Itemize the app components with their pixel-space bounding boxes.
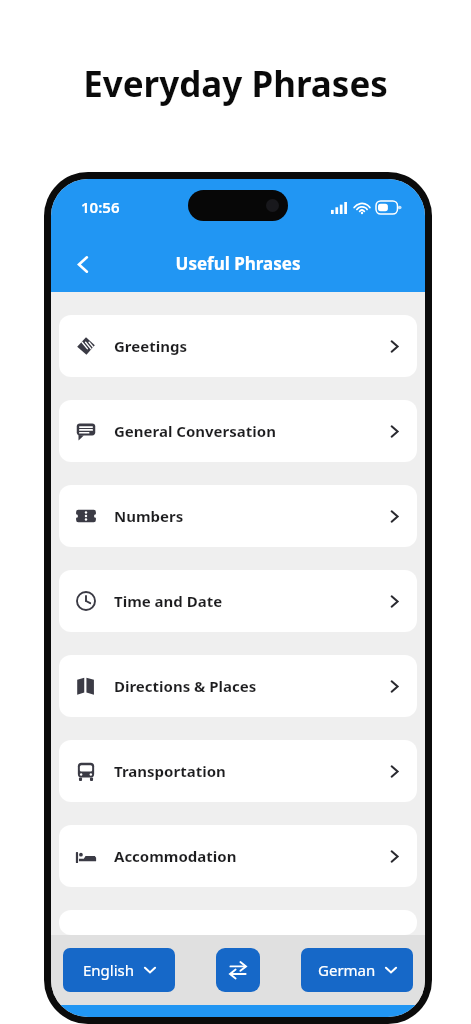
staticText: Transportation [114, 761, 388, 781]
staticText: Time and Date [114, 591, 388, 611]
staticText: German [318, 960, 376, 980]
staticText: Greetings [114, 336, 388, 356]
staticText: 10:56 [81, 197, 120, 217]
button[interactable]: Back [61, 242, 105, 286]
button[interactable]: Numbers [59, 485, 417, 547]
button[interactable]: Accommodation [59, 825, 417, 887]
staticText: Everyday Phrases [0, 60, 471, 108]
button[interactable]: General Conversation [59, 400, 417, 462]
button[interactable]: Swap languages [216, 948, 260, 992]
staticText: General Conversation [114, 421, 388, 441]
button[interactable]: English [63, 948, 175, 992]
button[interactable]: Greetings [59, 315, 417, 377]
staticText: English [83, 960, 135, 980]
staticText: Directions & Places [114, 676, 388, 696]
button[interactable]: German [301, 948, 413, 992]
button[interactable]: Transportation [59, 740, 417, 802]
button[interactable]: Time and Date [59, 570, 417, 632]
staticText: Numbers [114, 506, 388, 526]
staticText: Accommodation [114, 846, 388, 866]
button[interactable]: Directions & Places [59, 655, 417, 717]
staticText: Useful Phrases [105, 252, 371, 275]
